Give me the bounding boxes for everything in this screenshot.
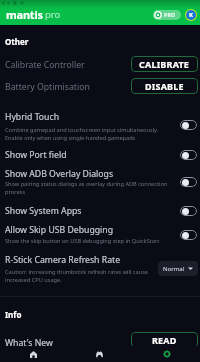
button[interactable]: CALIBRATE: [131, 56, 198, 72]
staticText: Show ADB Overlay Dialogs: [5, 168, 114, 180]
staticText: Show pairing status dialogs as overlay d…: [5, 180, 173, 196]
button[interactable]: Toggle Show System Apps: [180, 206, 197, 216]
button[interactable]: Normal: [158, 261, 198, 276]
staticText: Combine gamepad and touchscreen input si…: [5, 126, 173, 142]
staticText: Battery Optimisation: [5, 81, 90, 93]
staticText: pro: [45, 8, 61, 21]
staticText: Show the skip button on USB debugging st…: [5, 237, 173, 245]
button[interactable]: Toggle Hybrid Touch: [180, 120, 197, 130]
button[interactable]: Toggle Allow Skip USB Debugging: [180, 230, 197, 240]
staticText: Caution: increasing thumbstick refresh r…: [5, 268, 155, 284]
staticText: Info: [5, 309, 22, 320]
staticText: R-Stick Camera Refresh Rate: [5, 254, 121, 266]
button[interactable]: Settings: [133, 346, 200, 362]
staticText: mantis: [6, 7, 43, 22]
staticText: Calibrate Controller: [5, 59, 85, 71]
staticText: READ: [152, 334, 177, 346]
button[interactable]: Controllers: [66, 346, 133, 362]
staticText: Hybrid Touch: [5, 111, 60, 123]
staticText: Normal: [163, 265, 185, 273]
button[interactable]: DISABLE: [131, 78, 198, 94]
staticText: CALIBRATE: [139, 58, 190, 70]
button[interactable]: Account: [186, 10, 196, 20]
staticText: Show System Apps: [5, 205, 82, 217]
staticText: Show Port field: [5, 149, 67, 161]
staticText: PRO: [164, 12, 176, 19]
button[interactable]: Toggle Show Port field: [180, 150, 197, 160]
button[interactable]: READ: [131, 332, 198, 348]
staticText: DISABLE: [145, 80, 184, 92]
staticText: Other: [5, 36, 29, 47]
button[interactable]: PRO: [153, 10, 181, 20]
button[interactable]: Toggle Show ADB Overlay Dialogs: [180, 177, 197, 187]
button[interactable]: Home: [0, 346, 66, 362]
staticText: K: [189, 11, 193, 19]
staticText: Allow Skip USB Debugging: [5, 224, 114, 236]
staticText: What's New: [5, 337, 53, 349]
